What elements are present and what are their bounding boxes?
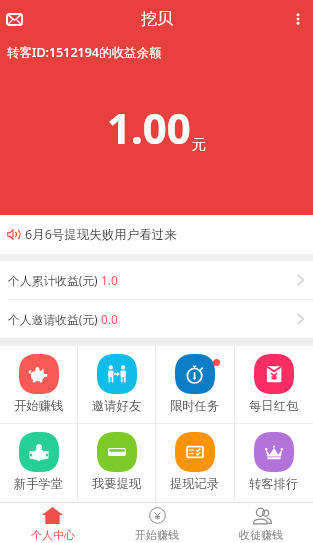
button[interactable]: 6月6号提现失败用户看过来 xyxy=(0,215,313,254)
staticText: 个人中心 xyxy=(31,528,75,542)
button[interactable]: Messages xyxy=(0,0,29,38)
staticText: 每日红包 xyxy=(249,398,299,413)
button[interactable]: 转客排行 xyxy=(235,424,313,501)
staticText: 0.0 xyxy=(101,311,118,327)
button[interactable]: 邀请好友 xyxy=(78,346,155,423)
staticText: 开始赚钱 xyxy=(135,528,179,542)
staticText: 6月6号提现失败用户看过来 xyxy=(25,226,177,243)
staticText: 新手学堂 xyxy=(14,476,64,491)
staticText: 个人累计收益(元) xyxy=(8,272,101,288)
button[interactable]: 新手学堂 xyxy=(0,424,77,501)
button[interactable]: 个人邀请收益(元) xyxy=(0,300,313,338)
staticText: 转客排行 xyxy=(249,476,299,491)
staticText: 提现记录 xyxy=(170,476,220,491)
staticText: 收徒赚钱 xyxy=(239,528,283,542)
button[interactable]: 提现记录 xyxy=(156,424,234,501)
button[interactable]: 每日红包 xyxy=(235,346,313,423)
button[interactable]: 收徒赚钱 xyxy=(209,503,313,543)
staticText: 开始赚钱 xyxy=(14,398,64,413)
staticText: 限时任务 xyxy=(170,398,220,413)
staticText: 我要提现 xyxy=(92,476,142,491)
staticText: 挖贝 xyxy=(141,9,173,29)
staticText: 邀请好友 xyxy=(92,398,142,413)
button[interactable]: More options xyxy=(283,0,313,38)
button[interactable]: 开始赚钱 xyxy=(105,503,209,543)
staticText: 转客ID:1512194的收益余额 xyxy=(7,44,162,61)
button[interactable]: 个人累计收益(元) xyxy=(0,261,313,299)
button[interactable]: 限时任务 xyxy=(156,346,234,423)
button[interactable]: 开始赚钱 xyxy=(0,346,77,423)
button[interactable]: 我要提现 xyxy=(78,424,155,501)
staticText: 元 xyxy=(192,136,206,154)
button[interactable]: 个人中心 xyxy=(0,503,105,543)
staticText: 个人邀请收益(元) xyxy=(8,311,101,327)
staticText: 1.00 xyxy=(107,99,191,156)
staticText: 1.0 xyxy=(101,272,118,288)
